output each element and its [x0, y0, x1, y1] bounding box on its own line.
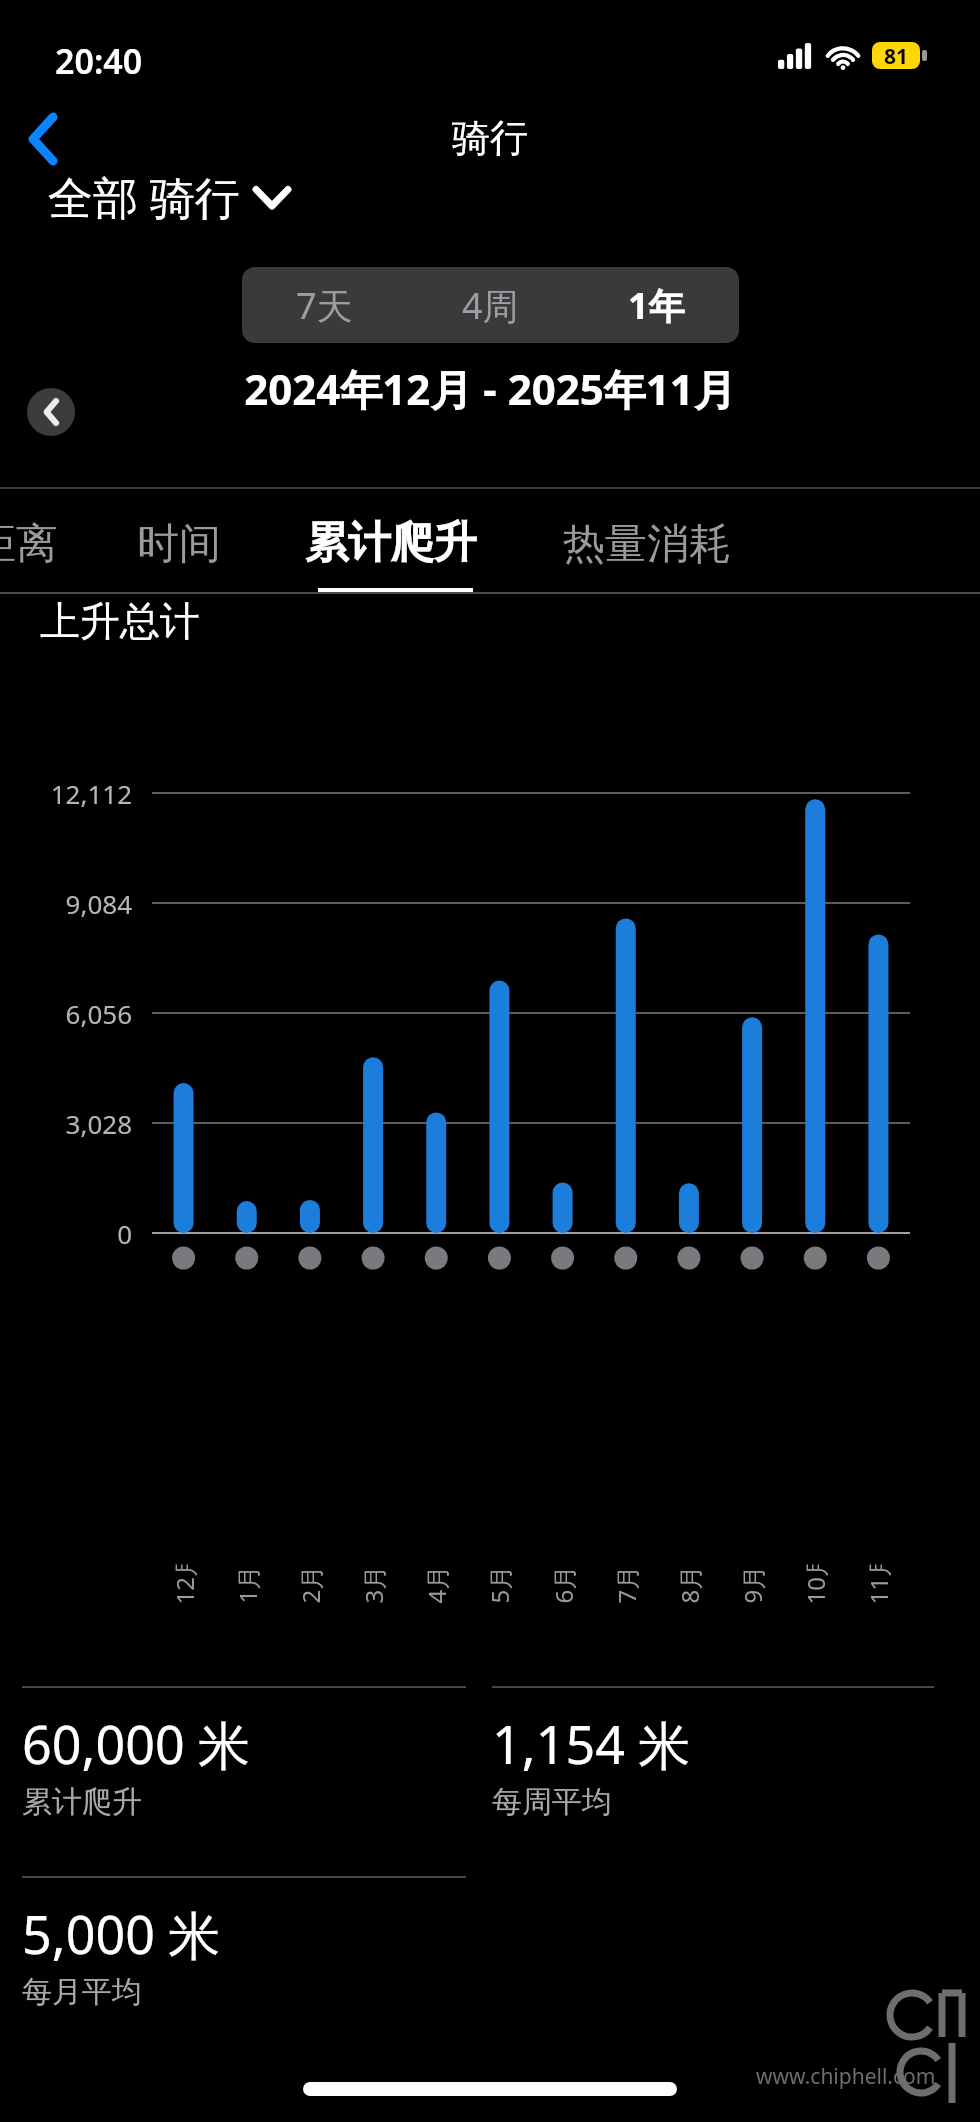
- staticText: 0: [0, 1216, 132, 1251]
- staticText: 7天: [296, 281, 353, 330]
- staticText: 8月: [672, 1565, 705, 1603]
- staticText: 1年: [628, 281, 685, 330]
- staticText: 5月: [482, 1565, 515, 1603]
- button[interactable]: 时间: [137, 518, 221, 571]
- staticText: 6,056: [0, 996, 132, 1031]
- button[interactable]: 60,000 米: [22, 1686, 490, 1821]
- staticText: www.chiphell.com: [756, 2062, 936, 2091]
- staticText: 4月: [419, 1565, 452, 1603]
- staticText: 全部 骑行: [48, 166, 240, 227]
- button[interactable]: 返回: [8, 103, 80, 175]
- staticText: 骑行: [0, 114, 980, 162]
- button[interactable]: 热量消耗: [563, 518, 731, 571]
- staticText: 9月: [735, 1565, 768, 1603]
- button[interactable]: 7天: [242, 267, 407, 343]
- button[interactable]: 1年: [573, 267, 739, 343]
- button[interactable]: 上一年: [27, 388, 75, 436]
- button[interactable]: 1,154 米: [492, 1686, 958, 1821]
- staticText: 2024年12月 - 2025年11月: [148, 360, 832, 417]
- staticText: 12月: [167, 1564, 200, 1604]
- staticText: 每周平均: [492, 1783, 612, 1821]
- staticText: 10月: [798, 1564, 831, 1604]
- staticText: 9,084: [0, 886, 132, 921]
- staticText: 3月: [356, 1565, 389, 1603]
- button[interactable]: 距离: [0, 518, 58, 571]
- staticText: 5,000 米: [22, 1898, 221, 1969]
- staticText: 60,000 米: [22, 1708, 251, 1779]
- staticText: 81: [884, 42, 909, 69]
- button[interactable]: 5,000 米: [22, 1876, 490, 2011]
- staticText: 2月: [293, 1565, 326, 1603]
- button[interactable]: 累计爬升: [305, 516, 477, 570]
- staticText: 每月平均: [22, 1973, 142, 2011]
- staticText: 1月: [230, 1565, 263, 1603]
- staticText: 累计爬升: [22, 1783, 142, 1821]
- staticText: 12,112: [0, 776, 132, 811]
- button[interactable]: 4周: [407, 267, 573, 343]
- staticText: 3,028: [0, 1106, 132, 1141]
- staticText: 1,154 米: [492, 1708, 691, 1779]
- staticText: 上升总计: [40, 596, 200, 646]
- staticText: 11月: [861, 1564, 894, 1604]
- staticText: 4周: [462, 281, 519, 330]
- staticText: 6月: [546, 1565, 579, 1603]
- button[interactable]: 全部 骑行: [48, 166, 288, 227]
- staticText: 7月: [609, 1565, 642, 1603]
- staticText: 20:40: [55, 38, 143, 84]
